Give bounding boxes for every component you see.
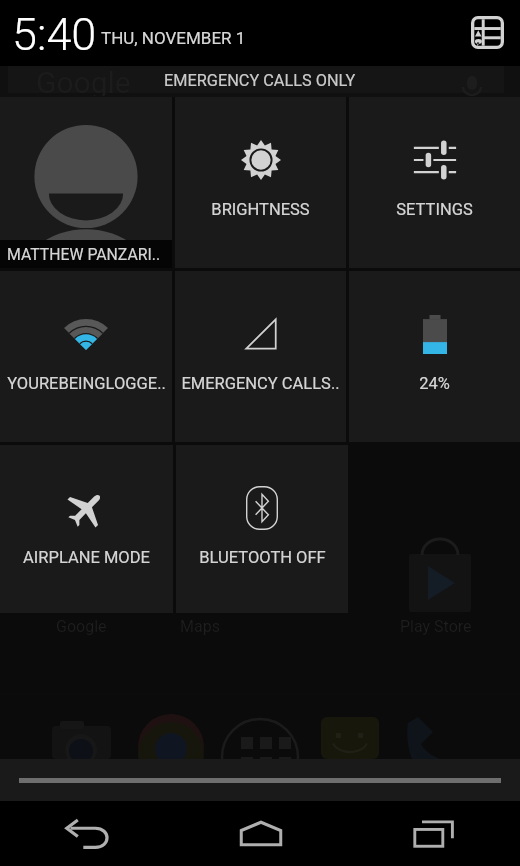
staticText: EMERGENCY CALLS ONLY — [164, 71, 356, 90]
button[interactable]: MATTHEW PANZARI.. — [0, 97, 172, 268]
button[interactable]: Home — [174, 801, 347, 866]
button[interactable]: Notifications — [465, 10, 509, 54]
staticText: Google — [36, 65, 131, 96]
staticText: YOUREBEINGLOGGE.. — [7, 374, 166, 393]
staticText: SETTINGS — [396, 200, 473, 219]
staticText: Play Store — [400, 617, 472, 636]
button[interactable]: BLUETOOTH OFF — [176, 445, 348, 613]
staticText: THU, NOVEMBER 1 — [101, 28, 246, 48]
staticText: BRIGHTNESS — [211, 200, 310, 219]
staticText: 24% — [419, 374, 450, 393]
button[interactable]: EMERGENCY CALLS.. — [175, 271, 346, 442]
staticText: BLUETOOTH OFF — [199, 548, 326, 567]
staticText: MATTHEW PANZARI.. — [7, 245, 161, 264]
button[interactable]: YOUREBEINGLOGGE.. — [0, 271, 172, 442]
button[interactable]: SETTINGS — [349, 97, 520, 268]
staticText: 5:40 — [12, 8, 97, 61]
button[interactable]: BRIGHTNESS — [175, 97, 346, 268]
staticText: Google — [56, 617, 107, 636]
staticText: AIRPLANE MODE — [23, 548, 150, 567]
button[interactable]: Back — [0, 801, 174, 866]
button[interactable]: 24% — [349, 271, 520, 442]
staticText: EMERGENCY CALLS.. — [181, 374, 340, 393]
button[interactable]: Recent apps — [347, 801, 520, 866]
button[interactable]: AIRPLANE MODE — [0, 445, 173, 613]
staticText: Maps — [180, 617, 220, 636]
